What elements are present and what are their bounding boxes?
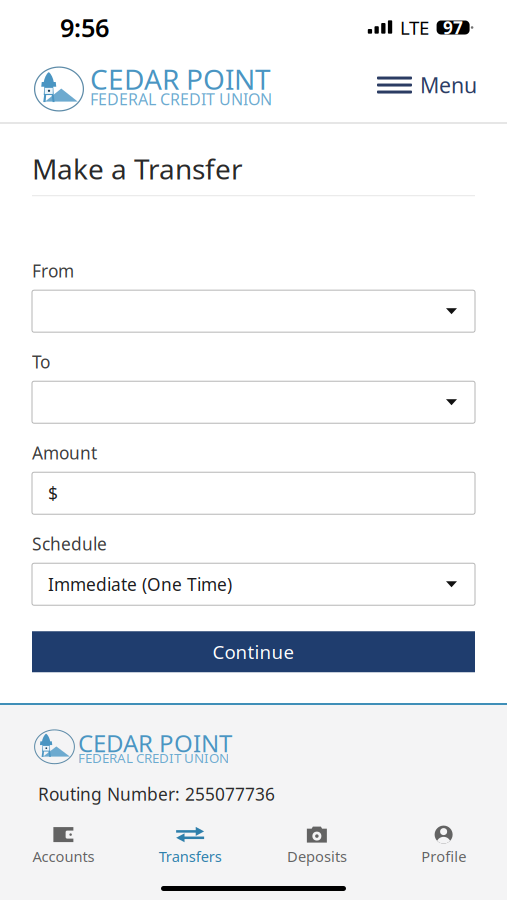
staticText: Menu [420, 71, 477, 99]
staticText: Transfers [159, 847, 222, 866]
staticText: Continue [212, 639, 294, 664]
staticText: FEDERAL CREDIT UNION [78, 749, 229, 767]
button[interactable]: Cedar Point Federal Credit Union [34, 727, 232, 767]
staticText: From [32, 259, 74, 282]
staticText: To [32, 350, 50, 373]
staticText: Deposits [287, 847, 347, 866]
button[interactable]: Menu [377, 71, 477, 99]
button[interactable]: Profile [380, 825, 507, 866]
button[interactable]: Continue [32, 631, 475, 672]
button[interactable] [32, 290, 475, 332]
button[interactable]: $ [32, 472, 475, 514]
staticText: Routing Number: 255077736 [38, 783, 275, 806]
staticText: CEDAR POINT [90, 60, 271, 97]
staticText: Amount [32, 441, 97, 464]
button[interactable]: Deposits [253, 825, 380, 866]
button[interactable]: Cedar Point Federal Credit Union home [34, 58, 272, 111]
staticText: LTE [400, 15, 429, 40]
staticText: 9:56 [60, 11, 109, 44]
button[interactable]: Transfers [127, 825, 254, 866]
staticText: Immediate (One Time) [48, 573, 232, 596]
staticText: CEDAR POINT [78, 727, 232, 759]
button[interactable] [32, 381, 475, 423]
button[interactable]: Accounts [0, 825, 127, 866]
staticText: $ [48, 482, 58, 505]
staticText: 97 [443, 16, 463, 39]
staticText: Profile [421, 847, 466, 866]
staticText: Make a Transfer [32, 150, 243, 187]
staticText: Accounts [32, 847, 94, 866]
staticText: Schedule [32, 532, 107, 555]
button[interactable]: Immediate (One Time) [32, 563, 475, 605]
staticText: FEDERAL CREDIT UNION [90, 88, 272, 110]
